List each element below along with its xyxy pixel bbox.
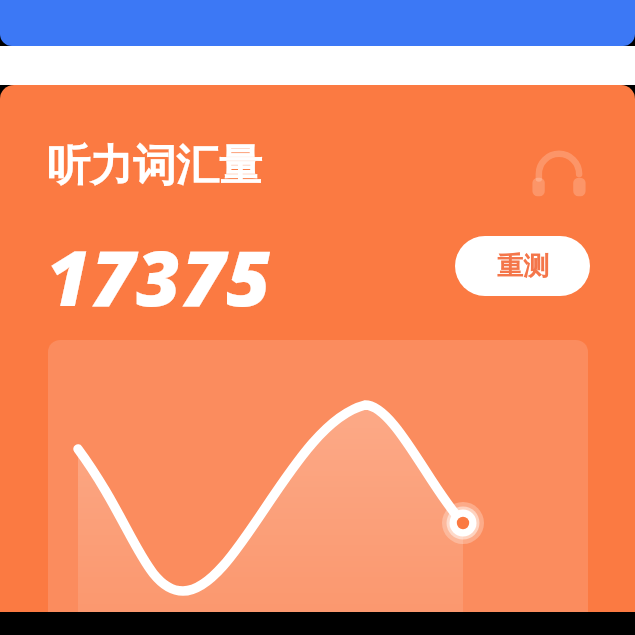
button[interactable]: Headphones: [528, 143, 590, 205]
staticText: 听力词汇量: [47, 139, 262, 193]
staticText: 重测: [497, 250, 549, 283]
button[interactable]: 重测: [455, 236, 590, 296]
button[interactable]: [0, 0, 635, 46]
staticText: 17375: [46, 225, 272, 329]
